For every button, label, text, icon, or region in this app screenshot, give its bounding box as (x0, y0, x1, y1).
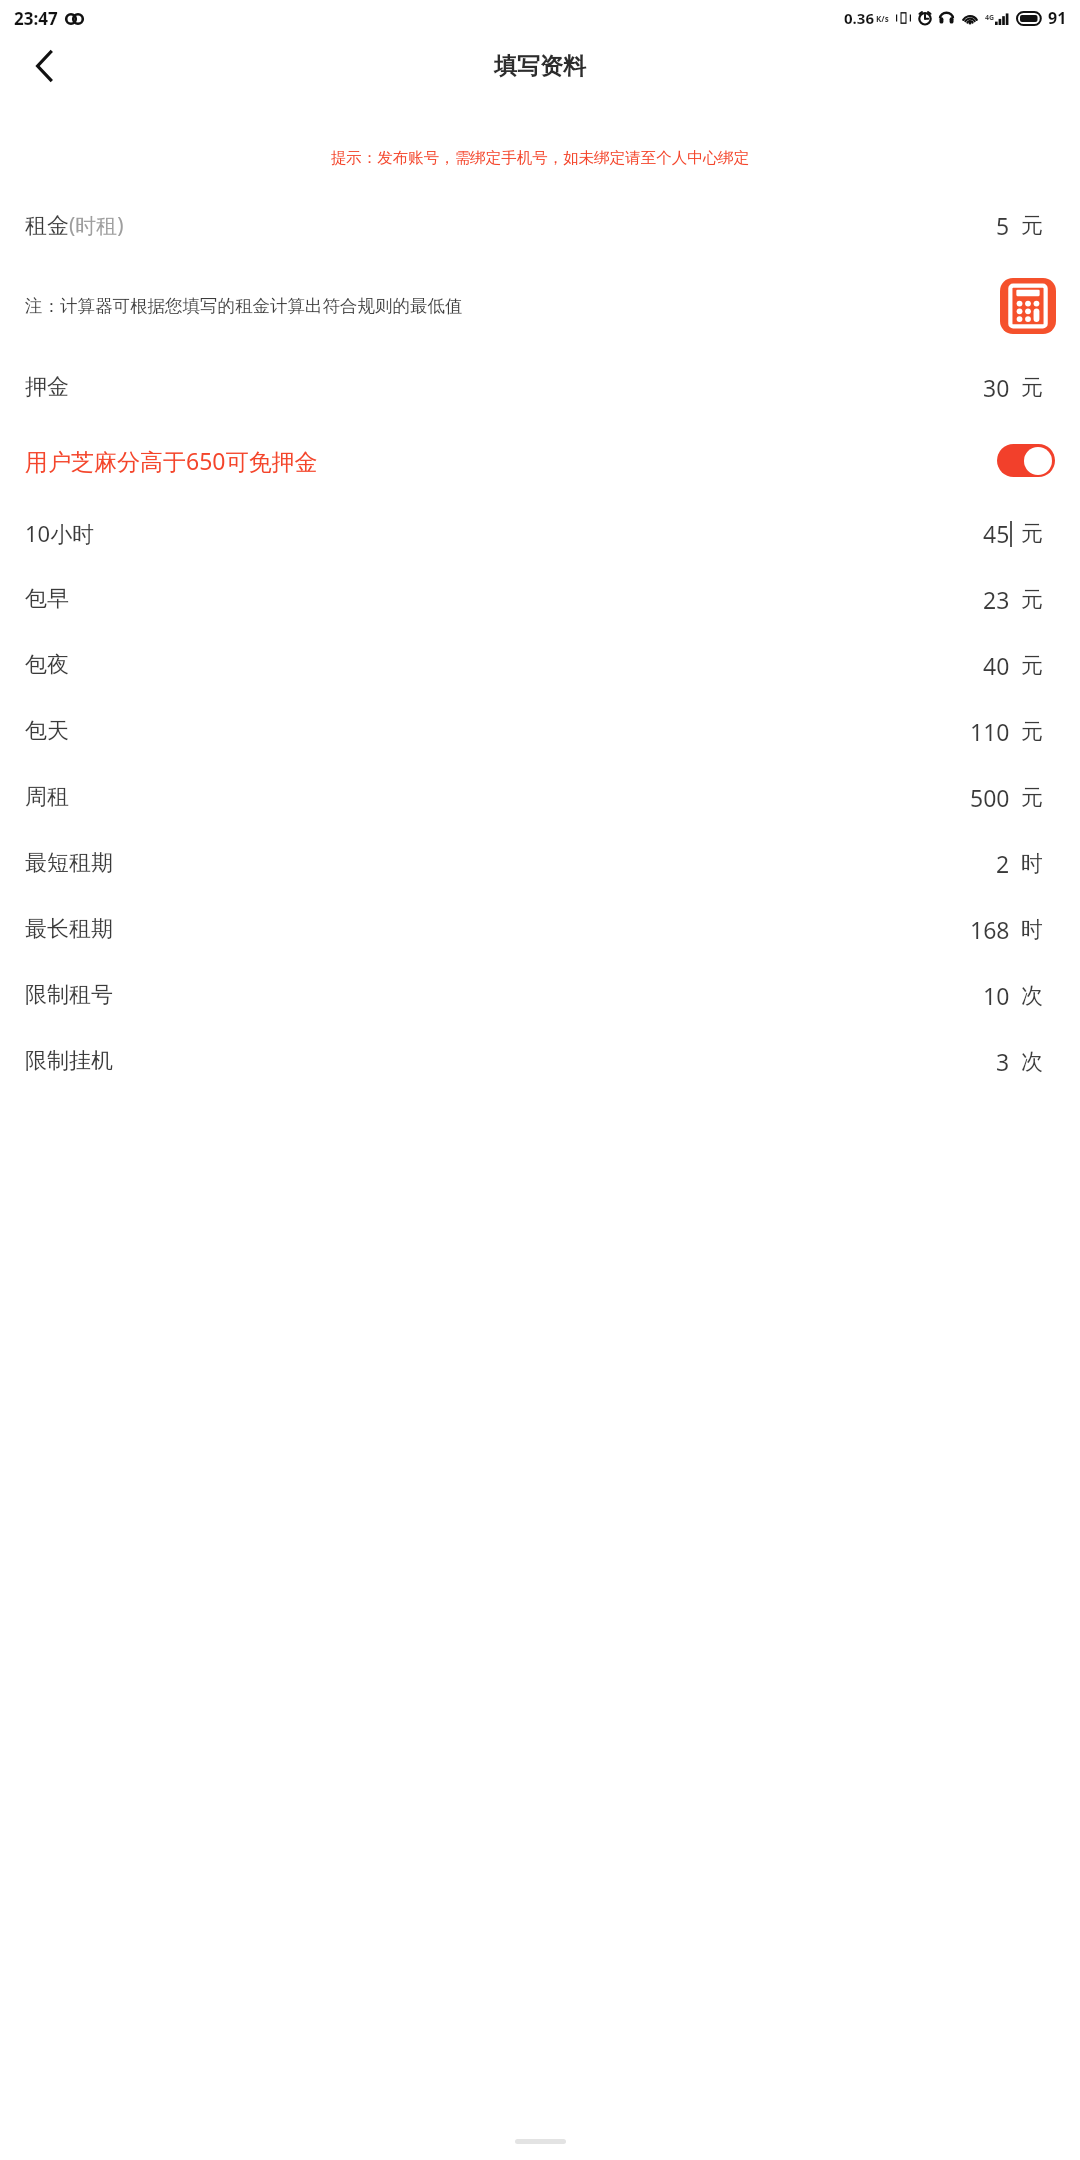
staticText: 用户芝麻分高于650可免押金 (25, 445, 318, 476)
staticText: 168 (970, 914, 1010, 945)
staticText: 23 (983, 584, 1010, 615)
staticText: 包天 (25, 717, 69, 745)
staticText: 10小时 (25, 518, 95, 548)
staticText: 元 (1021, 586, 1043, 614)
button[interactable]: 10小时 (0, 500, 1080, 566)
staticText: 包夜 (25, 651, 69, 679)
button[interactable]: 限制挂机 (0, 1028, 1080, 1094)
button[interactable]: Calculator (998, 276, 1058, 336)
staticText: 元 (1021, 520, 1043, 548)
staticText: 最长租期 (25, 915, 113, 943)
staticText: K/s (876, 13, 889, 24)
button[interactable]: 包夜 (0, 632, 1080, 698)
staticText: 元 (1021, 374, 1043, 402)
button[interactable]: 最短租期 (0, 830, 1080, 896)
button[interactable]: Back (20, 42, 68, 90)
staticText: 4G (985, 13, 995, 23)
button[interactable]: Free deposit toggle (997, 444, 1055, 477)
staticText: 次 (1021, 982, 1043, 1010)
button[interactable]: 租金 (0, 192, 1080, 258)
button[interactable]: 包早 (0, 566, 1080, 632)
staticText: 2 (996, 848, 1010, 879)
staticText: 时 (1021, 916, 1043, 944)
button[interactable]: 限制租号 (0, 962, 1080, 1028)
staticText: 40 (983, 650, 1010, 681)
staticText: (时租) (69, 211, 124, 240)
staticText: 元 (1021, 718, 1043, 746)
staticText: 元 (1021, 212, 1043, 240)
staticText: 45 (983, 518, 1010, 549)
staticText: 周租 (25, 783, 69, 811)
button[interactable]: 用户芝麻分高于650可免押金 (0, 420, 1080, 500)
button[interactable]: 周租 (0, 764, 1080, 830)
staticText: 5 (996, 210, 1010, 241)
staticText: 租金 (25, 212, 69, 240)
button[interactable]: 押金 (0, 354, 1080, 420)
staticText: 注：计算器可根据您填写的租金计算出符合规则的最低值 (25, 295, 976, 317)
staticText: 元 (1021, 784, 1043, 812)
staticText: 时 (1021, 850, 1043, 878)
staticText: 3 (996, 1046, 1010, 1077)
staticText: 110 (970, 716, 1010, 747)
staticText: 填写资料 (494, 52, 586, 81)
staticText: 提示：发布账号，需绑定手机号，如未绑定请至个人中心绑定 (14, 148, 1066, 168)
staticText: 押金 (25, 373, 69, 401)
staticText: 0.36 (844, 8, 874, 28)
staticText: 限制租号 (25, 981, 113, 1009)
button[interactable]: 最长租期 (0, 896, 1080, 962)
staticText: 91 (1048, 7, 1067, 29)
staticText: 次 (1021, 1048, 1043, 1076)
staticText: 500 (970, 782, 1010, 813)
staticText: 30 (983, 372, 1010, 403)
button[interactable]: 包天 (0, 698, 1080, 764)
staticText: 包早 (25, 585, 69, 613)
staticText: 最短租期 (25, 849, 113, 877)
staticText: 限制挂机 (25, 1047, 113, 1075)
staticText: 10 (983, 980, 1010, 1011)
staticText: 元 (1021, 652, 1043, 680)
staticText: 23:47 (14, 7, 58, 30)
